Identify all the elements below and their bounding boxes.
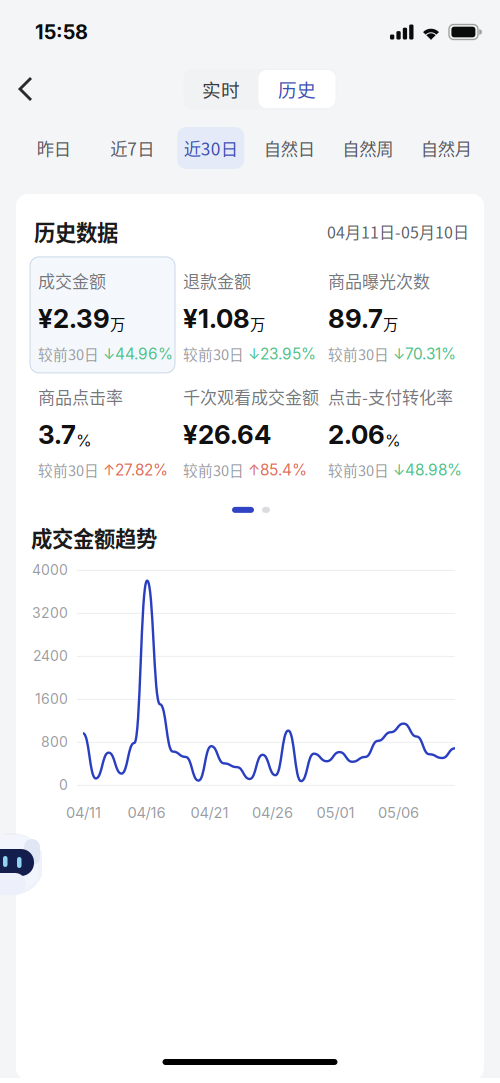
staticText: 较前30日	[183, 459, 244, 481]
staticText: 自然周	[342, 135, 393, 161]
staticText: 商品点击率	[38, 384, 123, 409]
staticText: 1600	[35, 690, 68, 707]
button[interactable]: 昨日	[20, 127, 87, 169]
button[interactable]: 成交金额	[30, 257, 175, 373]
staticText: 自然日	[264, 135, 315, 161]
staticText: 04月11日-05月10日	[327, 220, 469, 243]
button[interactable]: Back	[2, 67, 49, 111]
staticText: 近30日	[184, 135, 238, 161]
staticText: 800	[41, 733, 68, 750]
staticText: 48.98%	[405, 461, 462, 479]
staticText: 万	[110, 312, 125, 334]
staticText: 04/26	[252, 804, 293, 822]
button[interactable]: 商品曝光次数	[320, 257, 465, 373]
staticText: 23.95%	[260, 345, 316, 363]
staticText: ¥1.08	[183, 303, 250, 334]
staticText: 3200	[32, 604, 68, 621]
button[interactable]: 自然日	[256, 127, 323, 169]
staticText: ↑	[103, 461, 115, 479]
staticText: 0	[59, 776, 68, 793]
staticText: 04/11	[66, 804, 101, 822]
staticText: %	[76, 431, 92, 450]
button[interactable]: 自然周	[334, 127, 401, 169]
staticText: 自然月	[421, 135, 472, 161]
staticText: ↓	[248, 345, 260, 363]
staticText: 历史数据	[34, 216, 118, 247]
staticText: ↓	[393, 461, 405, 479]
button[interactable]: 历史	[258, 70, 335, 108]
staticText: 2400	[33, 647, 68, 664]
staticText: 较前30日	[328, 343, 389, 365]
button[interactable]: 实时	[183, 70, 258, 108]
button[interactable]: 商品点击率	[30, 373, 175, 489]
staticText: 15:58	[35, 20, 88, 44]
staticText: 成交金额趋势	[31, 522, 157, 553]
staticText: 万	[250, 312, 265, 334]
staticText: 近7日	[110, 135, 154, 161]
staticText: 成交金额	[38, 268, 106, 293]
staticText: 85.4%	[260, 461, 307, 479]
staticText: 44.96%	[115, 345, 173, 363]
staticText: 较前30日	[38, 343, 99, 365]
staticText: 4000	[32, 561, 68, 578]
staticText: 70.31%	[405, 345, 456, 363]
button[interactable]: 点击-支付转化率	[320, 373, 465, 489]
staticText: 万	[383, 312, 398, 334]
staticText: 千次观看成交金额	[183, 384, 319, 409]
button[interactable]: 近7日	[99, 127, 166, 169]
staticText: %	[385, 431, 401, 450]
staticText: 较前30日	[183, 343, 244, 365]
staticText: 点击-支付转化率	[328, 384, 453, 409]
staticText: 2.06	[328, 419, 385, 450]
button[interactable]: 千次观看成交金额	[175, 373, 320, 489]
staticText: ↑	[248, 461, 260, 479]
staticText: 05/01	[316, 804, 354, 822]
staticText: 27.82%	[115, 461, 168, 479]
staticText: 较前30日	[38, 459, 99, 481]
staticText: 实时	[202, 75, 240, 102]
staticText: ↓	[103, 345, 115, 363]
staticText: ¥26.64	[183, 419, 271, 450]
button[interactable]: 近30日	[177, 127, 244, 169]
staticText: 昨日	[37, 135, 71, 161]
staticText: 04/16	[127, 804, 165, 822]
button[interactable]: 自然月	[413, 127, 480, 169]
staticText: ¥2.39	[38, 303, 110, 334]
button[interactable]: 退款金额	[175, 257, 320, 373]
staticText: 05/06	[378, 804, 419, 822]
staticText: 较前30日	[328, 459, 389, 481]
staticText: ↓	[393, 345, 405, 363]
staticText: 3.7	[38, 419, 76, 450]
staticText: 退款金额	[183, 268, 251, 293]
staticText: 历史	[278, 75, 316, 102]
staticText: 商品曝光次数	[328, 268, 430, 293]
staticText: 89.7	[328, 303, 383, 334]
staticText: 04/21	[190, 804, 228, 822]
